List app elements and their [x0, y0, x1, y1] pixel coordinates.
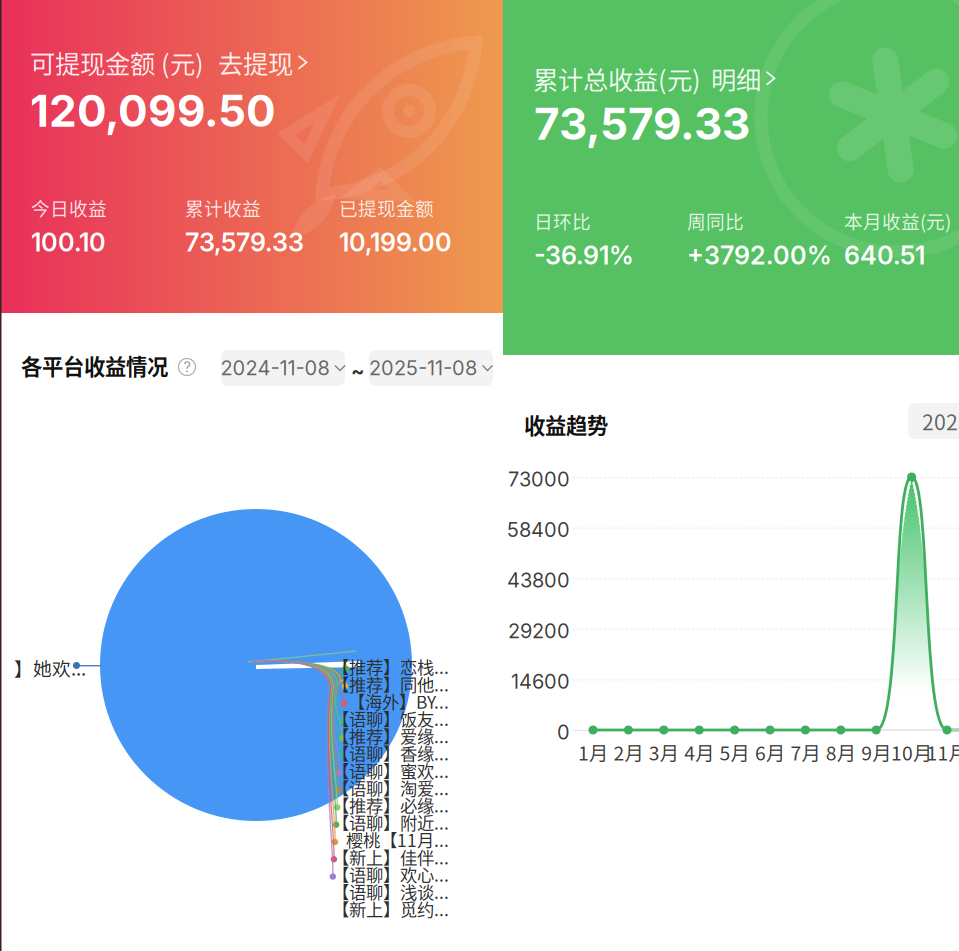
button[interactable]: 去提现: [204, 44, 307, 81]
staticText: 4月: [684, 738, 714, 766]
button[interactable]: 2025-11-08: [369, 350, 493, 386]
staticText: 今日收益: [31, 194, 107, 221]
staticText: 【新上】觅约...: [332, 896, 449, 921]
staticText: 累计收益: [185, 194, 261, 221]
staticText: +3792.00%: [687, 240, 832, 271]
staticText: 【语聊】饭友...: [332, 706, 449, 731]
staticText: ~: [351, 359, 365, 383]
staticText: 樱桃【11月...: [346, 827, 449, 852]
staticText: 43800: [507, 568, 570, 592]
staticText: 收益趋势: [524, 409, 608, 440]
staticText: 去提现: [218, 44, 293, 81]
staticText: 【推荐】恋栈...: [332, 654, 449, 679]
staticText: 120,099.50: [30, 84, 276, 137]
staticText: 周同比: [687, 207, 744, 234]
staticText: 6月: [755, 738, 785, 766]
staticText: 【语聊】香缘...: [332, 740, 449, 766]
staticText: 10月: [891, 738, 932, 766]
staticText: 【海外】BY...: [348, 689, 449, 714]
staticText: 本月收益(元): [844, 207, 951, 234]
button[interactable]: 2025年: [908, 403, 959, 439]
staticText: 累计总收益(元): [533, 60, 701, 97]
staticText: 【推荐】爱缘...: [332, 723, 449, 748]
staticText: 2025年: [922, 406, 959, 436]
staticText: 明细: [711, 60, 761, 97]
staticText: 2月: [613, 738, 643, 766]
staticText: 9月: [861, 738, 891, 766]
staticText: 73,579.33: [534, 97, 750, 150]
button[interactable]: 说明: [176, 356, 198, 378]
staticText: 73000: [508, 467, 570, 491]
staticText: 0: [557, 720, 570, 744]
staticText: 73,579.33: [185, 227, 304, 258]
staticText: 14600: [511, 669, 570, 694]
staticText: 29200: [508, 619, 570, 643]
staticText: 】她欢...: [14, 654, 86, 681]
staticText: 2025-11-08: [369, 356, 477, 380]
staticText: 5月: [720, 738, 750, 766]
staticText: 【语聊】浅谈...: [332, 879, 449, 904]
staticText: 100.10: [31, 227, 106, 258]
staticText: 3月: [649, 738, 679, 766]
staticText: ?: [183, 358, 190, 376]
staticText: 1月: [578, 738, 608, 766]
staticText: 日环比: [534, 207, 591, 234]
staticText: 各平台收益情况: [21, 350, 168, 381]
staticText: 已提现金额: [339, 194, 434, 221]
staticText: 10,199.00: [339, 227, 452, 258]
staticText: 【语聊】欢心...: [332, 862, 449, 887]
staticText: 【语聊】淘爱...: [332, 775, 449, 800]
staticText: -36.91%: [534, 240, 634, 271]
staticText: 【推荐】必缘...: [332, 792, 449, 817]
button[interactable]: 明细: [701, 60, 775, 97]
staticText: 11月: [926, 738, 959, 766]
staticText: 58400: [507, 518, 570, 542]
staticText: 7月: [790, 738, 820, 766]
staticText: 可提现金额 (元): [30, 44, 204, 81]
staticText: 【推荐】同他...: [332, 671, 449, 696]
staticText: 8月: [826, 738, 856, 766]
staticText: 【语聊】蜜欢...: [332, 758, 449, 783]
staticText: 【新上】佳伴...: [332, 844, 449, 869]
staticText: 2024-11-08: [220, 356, 329, 380]
staticText: 640.51: [844, 240, 925, 271]
staticText: 【语聊】附近...: [332, 810, 449, 835]
button[interactable]: 2024-11-08: [221, 350, 345, 386]
